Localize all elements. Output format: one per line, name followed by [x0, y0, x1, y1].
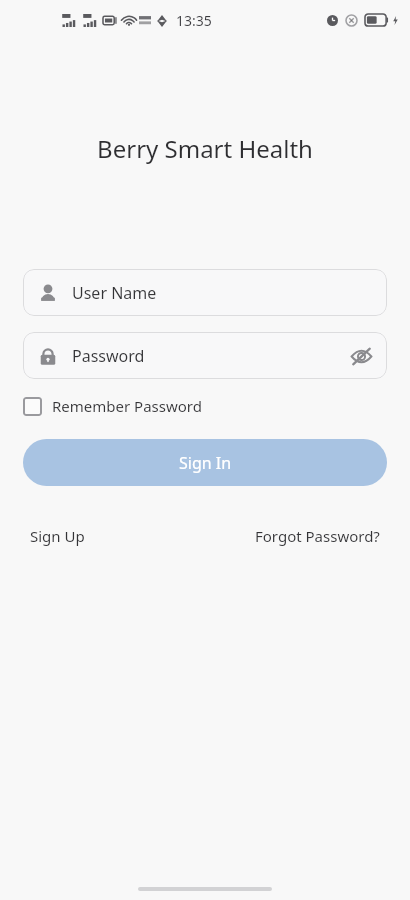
- staticText: Forgot Password?: [255, 526, 380, 546]
- other: User: [37, 282, 59, 304]
- staticText: User Name: [72, 282, 157, 304]
- staticText: Sign In: [179, 452, 232, 474]
- button[interactable]: Sign In: [23, 439, 387, 486]
- button[interactable]: Toggle password visibility: [339, 334, 383, 378]
- button[interactable]: Remember Password: [23, 396, 202, 416]
- button[interactable]: Sign Up: [30, 522, 85, 550]
- staticText: Remember Password: [52, 396, 202, 416]
- staticText: 13:35: [176, 11, 212, 30]
- staticText: Sign Up: [30, 526, 85, 546]
- staticText: Password: [72, 345, 145, 367]
- button[interactable]: User: [23, 269, 387, 316]
- other: Password: [37, 345, 59, 367]
- button[interactable]: Forgot Password?: [255, 522, 380, 550]
- staticText: Berry Smart Health: [0, 132, 410, 165]
- button[interactable]: Password: [23, 332, 387, 379]
